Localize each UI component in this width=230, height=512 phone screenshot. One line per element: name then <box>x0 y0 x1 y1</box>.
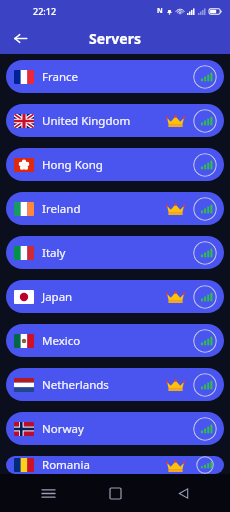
button[interactable]: Connect <box>193 197 217 221</box>
button[interactable]: France <box>6 60 224 93</box>
staticText: Hong Kong <box>42 157 103 173</box>
button[interactable]: Japan <box>6 280 224 313</box>
button[interactable]: Connect <box>193 456 217 474</box>
button[interactable]: Hong Kong <box>6 148 224 181</box>
button[interactable]: Italy <box>6 236 224 269</box>
staticText: N <box>157 6 163 16</box>
staticText: France <box>42 69 79 85</box>
button[interactable]: Back <box>163 474 203 512</box>
button[interactable]: Home <box>95 474 135 512</box>
staticText: Ireland <box>42 201 81 217</box>
staticText: Norway <box>42 421 84 437</box>
button[interactable]: Ireland <box>6 192 224 225</box>
button[interactable]: Connect <box>193 285 217 309</box>
button[interactable]: Romania <box>6 456 224 474</box>
staticText: United Kingdom <box>42 113 131 129</box>
button[interactable]: Recent apps <box>28 474 68 512</box>
staticText: 22:12 <box>33 5 57 17</box>
button[interactable]: Mexico <box>6 324 224 357</box>
button[interactable]: Connect <box>193 65 217 89</box>
staticText: Romania <box>42 457 90 473</box>
button[interactable]: United Kingdom <box>6 104 224 137</box>
button[interactable]: Norway <box>6 412 224 445</box>
staticText: Japan <box>42 289 73 305</box>
staticText: Italy <box>42 245 66 261</box>
staticText: Mexico <box>42 333 81 349</box>
button[interactable]: Connect <box>193 153 217 177</box>
button[interactable]: Connect <box>193 373 217 397</box>
staticText: Netherlands <box>42 377 109 393</box>
button[interactable]: Netherlands <box>6 368 224 401</box>
button[interactable]: Back <box>6 24 34 52</box>
button[interactable]: Connect <box>193 241 217 265</box>
button[interactable]: Connect <box>193 109 217 133</box>
button[interactable]: Connect <box>193 329 217 353</box>
button[interactable]: Connect <box>193 417 217 441</box>
staticText: Servers <box>89 29 141 48</box>
